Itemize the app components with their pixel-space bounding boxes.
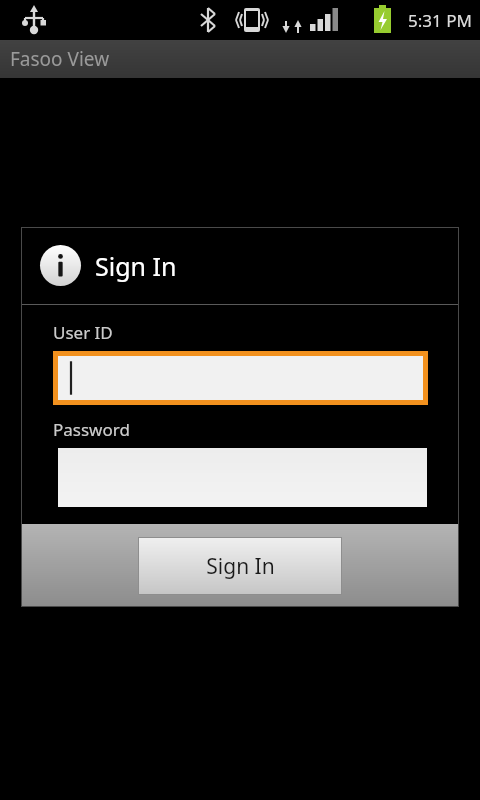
staticText: Sign In: [95, 249, 177, 283]
button[interactable]: [58, 356, 423, 400]
staticText: Password: [53, 418, 130, 441]
staticText: Fasoo View: [10, 46, 110, 72]
button[interactable]: Sign In: [139, 538, 341, 594]
staticText: User ID: [53, 321, 113, 344]
staticText: Sign In: [206, 552, 275, 581]
staticText: 5:31 PM: [408, 9, 472, 32]
